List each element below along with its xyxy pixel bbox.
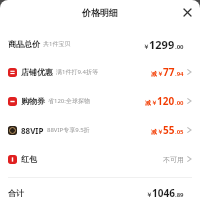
staticText: .94 (175, 70, 184, 78)
staticText: 省120:全球探物 (48, 97, 90, 105)
staticText: 减￥ (151, 128, 163, 136)
staticText: 88VIP (21, 125, 44, 136)
staticText: .89 (175, 191, 184, 199)
staticText: 不可用 (163, 155, 184, 164)
staticText: 77 (163, 65, 175, 79)
staticText: 共1件宝贝 (43, 40, 71, 48)
staticText: 88VIP专享9.5折 (47, 126, 90, 134)
staticText: 满1件打9.4折等 (56, 68, 98, 76)
button[interactable]: 红包 (0, 149, 200, 169)
staticText: ￥ (146, 191, 152, 199)
staticText: ￥ (143, 43, 149, 51)
staticText: 合计 (8, 188, 24, 198)
button[interactable]: 88VIP (0, 120, 200, 140)
staticText: 1299 (149, 37, 175, 52)
staticText: 购物券 (21, 96, 45, 106)
staticText: 店铺优惠 (21, 67, 53, 77)
staticText: 减￥ (145, 99, 157, 107)
button[interactable]: 购物券 (0, 91, 200, 111)
staticText: 120 (157, 94, 175, 108)
button[interactable]: 商品总价 (0, 34, 200, 54)
button[interactable]: Close (180, 5, 194, 19)
staticText: .00 (175, 99, 184, 107)
staticText: 1046 (152, 186, 175, 200)
staticText: .05 (175, 128, 184, 136)
button[interactable]: 店铺优惠 (0, 62, 200, 82)
staticText: 减￥ (151, 70, 163, 78)
staticText: .00 (175, 43, 184, 51)
staticText: 商品总价 (8, 39, 40, 49)
staticText: 55 (163, 123, 175, 137)
staticText: 价格明细 (82, 7, 118, 18)
staticText: 红包 (21, 154, 37, 164)
